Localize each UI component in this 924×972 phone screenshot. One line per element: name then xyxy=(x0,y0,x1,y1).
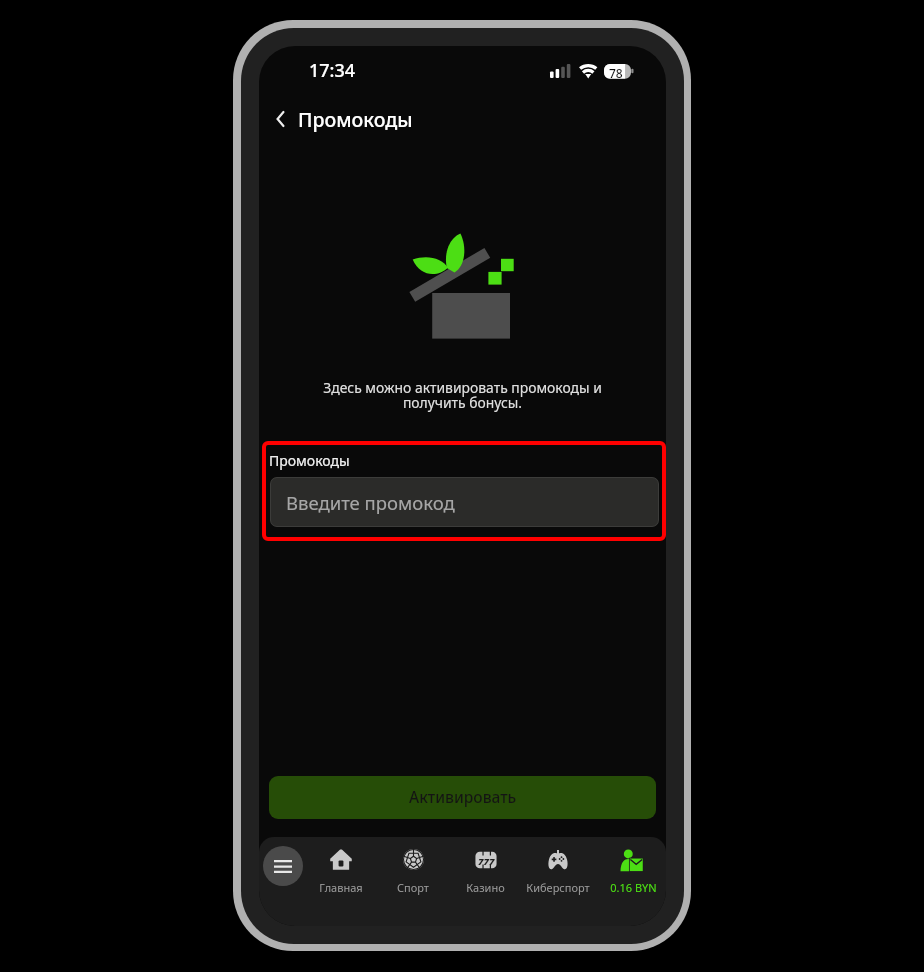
button[interactable]: Киберспорт xyxy=(522,839,594,905)
staticText: 78 xyxy=(609,65,623,80)
staticText: Киберспорт xyxy=(526,880,590,895)
button[interactable]: Спорт xyxy=(377,839,449,905)
staticText: 777 xyxy=(478,855,495,868)
staticText: Спорт xyxy=(397,880,429,895)
staticText: Введите промокод xyxy=(286,490,455,515)
button[interactable]: Назад xyxy=(263,102,297,136)
staticText: 17:34 xyxy=(309,58,356,83)
staticText: Активировать xyxy=(409,786,517,807)
button[interactable]: Главная xyxy=(305,839,377,905)
button[interactable]: 0.16 BYN xyxy=(597,839,666,905)
button[interactable]: Активировать xyxy=(269,776,656,819)
button[interactable]: Меню xyxy=(263,846,303,886)
button[interactable]: 777 xyxy=(449,839,521,905)
button[interactable]: Введите промокод xyxy=(270,477,659,527)
staticText: Здесь можно активировать промокоды и пол… xyxy=(275,378,650,412)
staticText: Казино xyxy=(466,880,505,895)
staticText: Промокоды xyxy=(298,106,413,133)
staticText: Промокоды xyxy=(269,451,350,470)
staticText: 0.16 BYN xyxy=(610,880,657,895)
staticText: Главная xyxy=(319,880,363,895)
